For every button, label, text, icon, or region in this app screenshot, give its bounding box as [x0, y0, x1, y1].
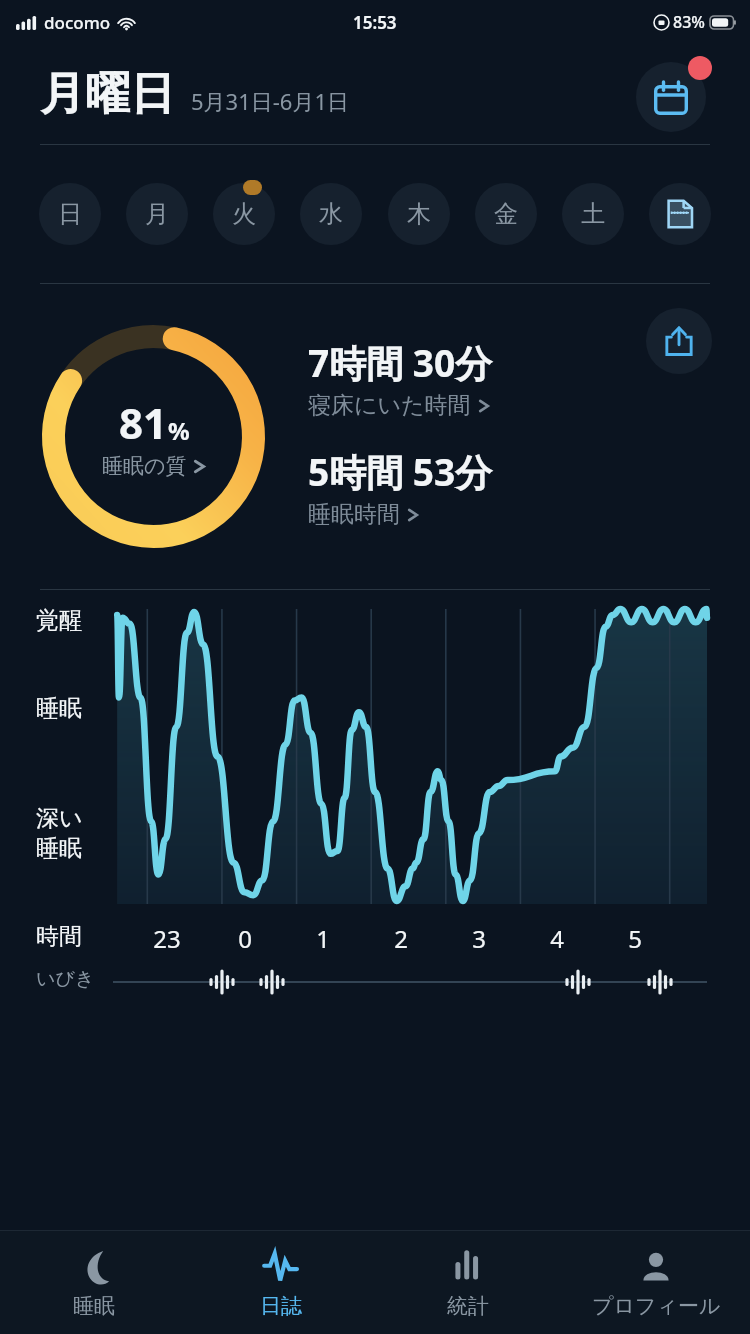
button[interactable]: 睡眠 — [0, 1231, 187, 1334]
staticText: 83% — [673, 11, 705, 33]
button[interactable]: 日誌 — [187, 1231, 374, 1334]
staticText: % — [168, 414, 190, 447]
button[interactable]: Report — [648, 182, 712, 246]
staticText: 4 — [550, 922, 564, 955]
button[interactable]: 水 — [299, 182, 363, 246]
staticText: 統計 — [447, 1293, 489, 1319]
staticText: 火 — [232, 199, 256, 229]
staticText: 睡眠の質 — [102, 453, 187, 479]
staticText: 7時間 30分 — [308, 337, 493, 388]
button[interactable]: Share — [646, 308, 712, 374]
button[interactable]: 日 — [38, 182, 102, 246]
staticText: docomo — [44, 11, 111, 34]
staticText: 睡眠 — [73, 1293, 115, 1319]
button[interactable]: 5時間 53分 — [308, 446, 493, 529]
staticText: 81 — [119, 394, 168, 451]
button[interactable]: プロフィール — [562, 1231, 750, 1334]
staticText: 15:53 — [353, 11, 397, 34]
staticText: 2 — [394, 922, 408, 955]
button[interactable]: 月 — [125, 182, 189, 246]
staticText: 木 — [407, 199, 431, 229]
staticText: 5月31日-6月1日 — [191, 86, 350, 116]
staticText: 金 — [494, 199, 518, 229]
button[interactable]: 火 — [212, 182, 276, 246]
staticText: 5時間 53分 — [308, 446, 493, 497]
staticText: 覚醒 — [36, 606, 82, 635]
staticText: 睡眠 — [36, 694, 82, 723]
button[interactable]: 81 — [36, 319, 271, 554]
button[interactable]: 土 — [561, 182, 625, 246]
staticText: 5 — [628, 922, 642, 955]
staticText: いびき — [36, 967, 95, 991]
button[interactable]: 金 — [474, 182, 538, 246]
staticText: 月 — [145, 199, 169, 229]
staticText: 睡眠時間 — [308, 500, 400, 529]
button[interactable]: 7時間 30分 — [308, 337, 493, 420]
button[interactable]: 統計 — [374, 1231, 562, 1334]
staticText: 月曜日 — [40, 66, 175, 123]
staticText: 深い 睡眠 — [36, 804, 83, 863]
staticText: 日誌 — [260, 1293, 302, 1319]
staticText: 日 — [58, 199, 82, 229]
staticText: 時間 — [36, 922, 82, 951]
staticText: 3 — [472, 922, 486, 955]
button[interactable]: Calendar — [636, 56, 712, 132]
button[interactable]: 木 — [387, 182, 451, 246]
staticText: 水 — [319, 199, 343, 229]
staticText: 0 — [238, 922, 252, 955]
staticText: 23 — [153, 922, 181, 955]
staticText: プロフィール — [592, 1293, 721, 1319]
staticText: 1 — [316, 922, 330, 955]
staticText: 寝床にいた時間 — [308, 391, 471, 420]
staticText: 土 — [581, 199, 605, 229]
